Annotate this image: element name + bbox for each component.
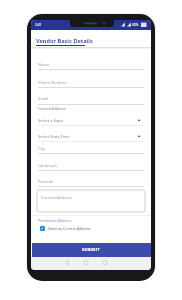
button[interactable] — [38, 159, 144, 171]
button[interactable] — [38, 142, 144, 154]
staticText: City — [38, 146, 46, 151]
staticText: 30% — [132, 23, 139, 27]
button[interactable] — [38, 114, 144, 126]
staticText: Pincode — [38, 179, 53, 184]
staticText: Permanent Address — [38, 218, 72, 223]
staticText: 2:41 — [35, 23, 42, 27]
staticText: Phone Number — [38, 80, 67, 85]
staticText: Current Address — [41, 195, 72, 200]
button[interactable] — [38, 175, 144, 187]
staticText: Current Address — [38, 106, 66, 111]
button[interactable] — [38, 130, 144, 142]
staticText: Name — [38, 62, 50, 67]
staticText: Vendor Basic Details — [36, 37, 93, 45]
button[interactable]: SUBMIT — [32, 243, 151, 257]
staticText: Select a State — [38, 118, 64, 123]
button[interactable] — [38, 76, 144, 88]
staticText: Same as Current Address — [48, 226, 91, 231]
staticText: SUBMIT — [82, 247, 101, 253]
button[interactable] — [38, 92, 144, 104]
button[interactable] — [37, 190, 145, 212]
button[interactable] — [38, 58, 144, 70]
staticText: Select State First — [38, 134, 69, 139]
staticText: Landmark — [38, 163, 58, 168]
staticText: Email — [38, 96, 49, 101]
button[interactable] — [40, 226, 45, 231]
